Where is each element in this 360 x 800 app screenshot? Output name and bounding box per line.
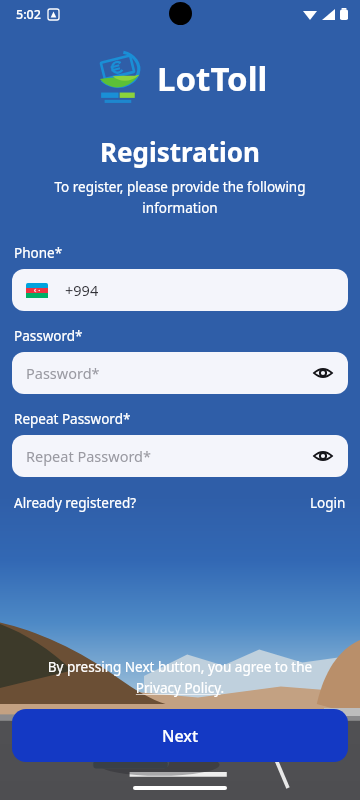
staticText: To register, please provide the followin… — [34, 178, 326, 217]
button[interactable]: Login — [310, 494, 346, 512]
staticText: LotToll — [157, 56, 268, 101]
button[interactable]: Next — [12, 709, 348, 762]
staticText: Next — [162, 725, 199, 747]
staticText: Phone* — [14, 244, 63, 262]
button[interactable]: Show password — [308, 441, 338, 471]
staticText: Password* — [26, 363, 100, 383]
staticText: By pressing Next button, you agree to th… — [28, 658, 332, 697]
staticText: Already registered? — [14, 494, 137, 512]
staticText: Repeat Password* — [26, 446, 152, 466]
button[interactable]: Already registered? — [14, 494, 137, 512]
staticText: Registration — [0, 134, 360, 169]
staticText: 5:02 — [16, 6, 41, 23]
staticText: Password* — [14, 327, 83, 345]
staticText: +994 — [65, 280, 99, 300]
button[interactable]: Repeat Password* — [12, 435, 348, 477]
staticText: Repeat Password* — [14, 410, 131, 428]
button[interactable]: +994 — [12, 269, 348, 311]
button[interactable]: Show password — [308, 358, 338, 388]
button[interactable]: Password* — [12, 352, 348, 394]
staticText: Login — [310, 494, 346, 512]
